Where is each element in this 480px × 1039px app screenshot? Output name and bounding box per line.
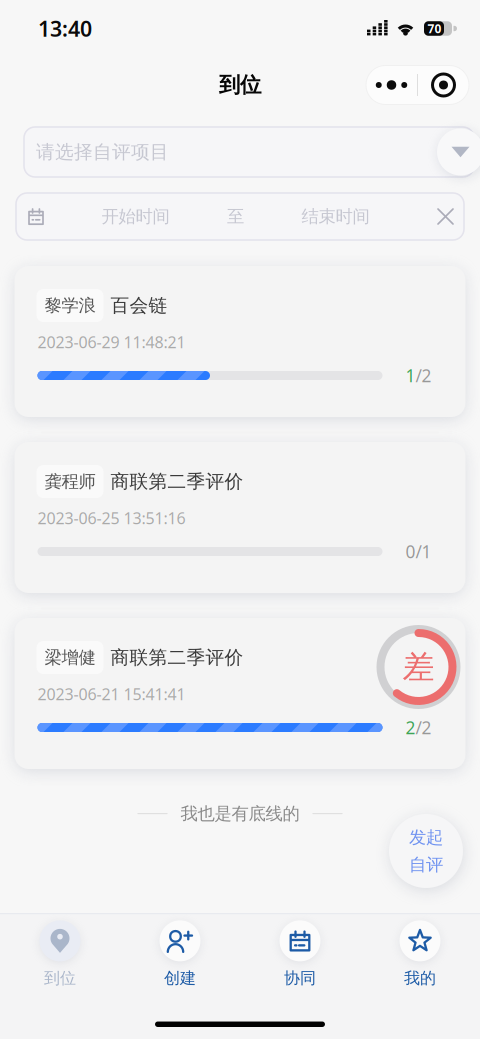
- staticText: 2023-06-29 11:48:21: [37, 331, 185, 353]
- staticText: 0: [405, 540, 415, 563]
- staticText: /2: [415, 716, 431, 739]
- staticText: 发起: [409, 827, 443, 848]
- button[interactable]: 我的: [360, 916, 480, 992]
- staticText: 商联第二季评价: [110, 470, 243, 493]
- staticText: 1: [405, 364, 415, 387]
- staticText: 我也是有底线的: [180, 803, 299, 824]
- button[interactable]: 龚程师: [14, 442, 465, 593]
- button[interactable]: More / Close mini program: [366, 65, 469, 104]
- staticText: 黎学浪: [44, 295, 95, 316]
- staticText: 2: [405, 716, 415, 739]
- staticText: 差: [402, 647, 434, 687]
- button[interactable]: 黎学浪: [14, 266, 465, 417]
- staticText: 梁增健: [44, 647, 95, 668]
- button[interactable]: 到位: [0, 916, 120, 992]
- staticText: 请选择自评项目: [36, 140, 169, 163]
- staticText: 自评: [409, 854, 443, 875]
- staticText: 协同: [284, 968, 316, 988]
- button[interactable]: 创建: [120, 916, 240, 992]
- staticText: /2: [415, 364, 431, 387]
- button[interactable]: 梁增健: [14, 618, 465, 769]
- button[interactable]: 协同: [240, 916, 360, 992]
- staticText: 到位: [44, 968, 76, 988]
- staticText: 70: [427, 20, 441, 36]
- staticText: 百会链: [110, 294, 167, 317]
- button[interactable]: 发起自评: [389, 814, 463, 888]
- staticText: /1: [415, 540, 431, 563]
- staticText: 商联第二季评价: [110, 646, 243, 669]
- staticText: 13:40: [38, 14, 92, 43]
- staticText: 2023-06-21 15:41:41: [37, 683, 185, 705]
- staticText: 龚程师: [44, 471, 95, 492]
- staticText: 2023-06-25 13:51:16: [37, 507, 185, 529]
- staticText: 到位: [219, 72, 261, 98]
- staticText: 结束时间: [301, 206, 369, 227]
- staticText: 开始时间: [101, 206, 169, 227]
- button[interactable]: Expand project list: [437, 128, 480, 175]
- button[interactable]: Clear date range: [427, 195, 464, 238]
- staticText: 我的: [404, 968, 436, 988]
- staticText: 至: [227, 206, 244, 227]
- staticText: 创建: [164, 968, 196, 988]
